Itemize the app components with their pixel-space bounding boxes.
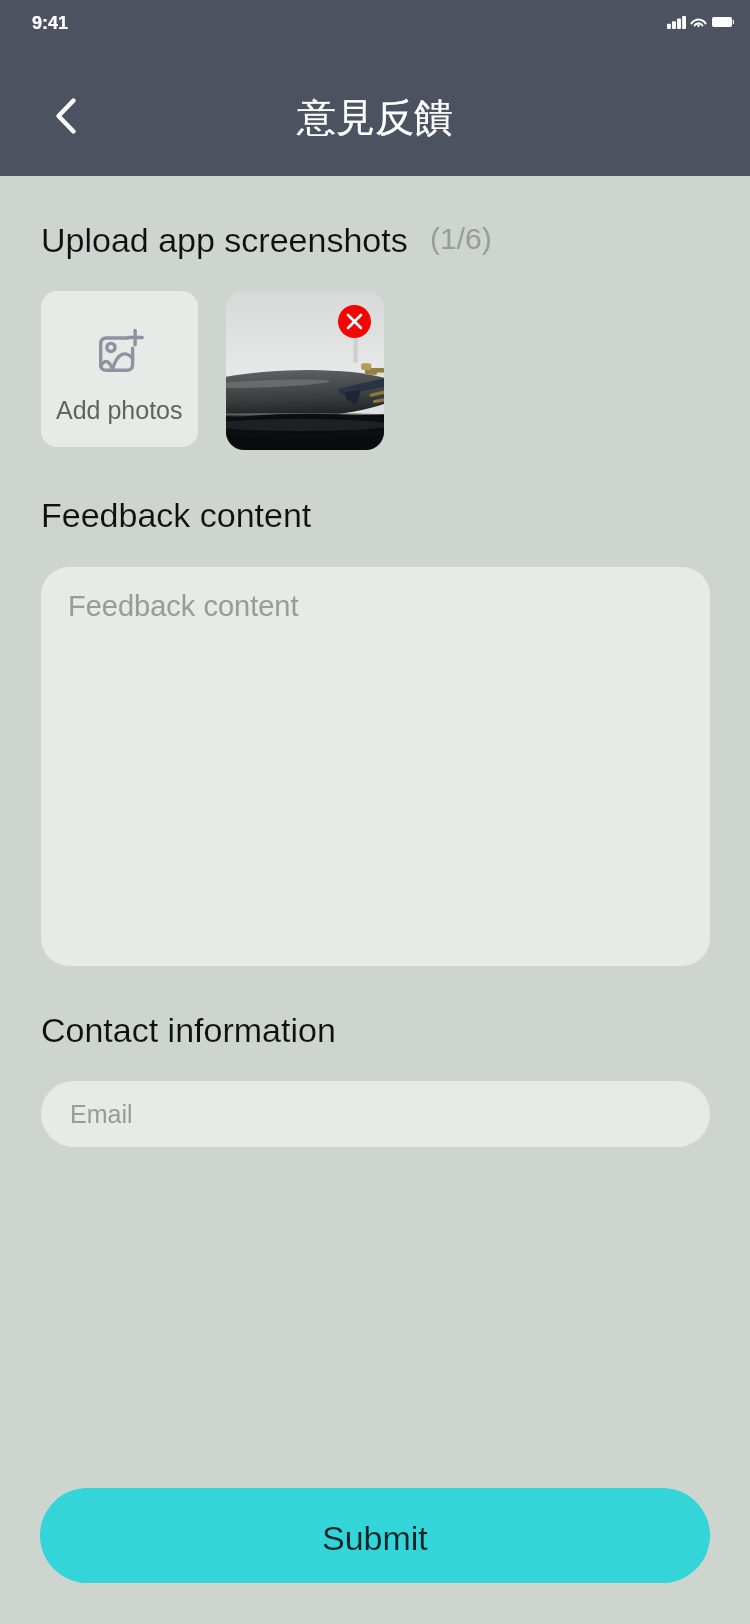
staticText: (1/6) bbox=[430, 222, 492, 256]
staticText: Feedback content bbox=[41, 496, 312, 534]
button[interactable]: Feedback content bbox=[41, 567, 710, 966]
staticText: Email bbox=[70, 1100, 133, 1128]
button[interactable]: Submit bbox=[40, 1488, 710, 1583]
button[interactable]: Add photos bbox=[41, 291, 198, 447]
staticText: 9:41 bbox=[32, 13, 69, 33]
staticText: Contact information bbox=[41, 1011, 336, 1049]
staticText: Feedback content bbox=[68, 590, 299, 622]
button[interactable]: Email bbox=[41, 1081, 710, 1147]
button[interactable]: Screenshot bbox=[226, 291, 384, 450]
button[interactable]: Remove photo bbox=[338, 305, 371, 338]
staticText: Upload app screenshots bbox=[41, 221, 408, 259]
staticText: Submit bbox=[322, 1519, 428, 1557]
staticText: 意見反饋 bbox=[297, 93, 453, 142]
staticText: Add photos bbox=[56, 396, 183, 424]
button[interactable]: Back bbox=[30, 80, 102, 152]
